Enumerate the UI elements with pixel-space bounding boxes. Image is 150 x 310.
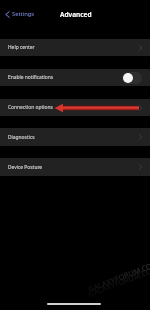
staticText: GALAXYFORUM.COM	[87, 258, 150, 294]
staticText: Settings	[12, 10, 35, 18]
staticText: GALAXYFORUM.COM	[87, 263, 150, 299]
staticText: Help center	[8, 44, 35, 51]
staticText: Advanced	[60, 10, 92, 19]
staticText: Diagnostics	[8, 134, 35, 141]
button[interactable]: Device Posture	[0, 158, 150, 176]
button[interactable]: Connection options	[0, 99, 150, 116]
staticText: Connection options	[8, 104, 53, 111]
staticText: Enable notifications	[8, 74, 54, 81]
button[interactable]: Enable notifications	[0, 69, 150, 86]
button[interactable]: Help center	[0, 39, 150, 56]
staticText: Device Posture	[8, 164, 43, 171]
button[interactable]: Enable notifications toggle	[122, 72, 142, 84]
button[interactable]: Settings	[0, 8, 39, 20]
button[interactable]: Diagnostics	[0, 128, 150, 146]
